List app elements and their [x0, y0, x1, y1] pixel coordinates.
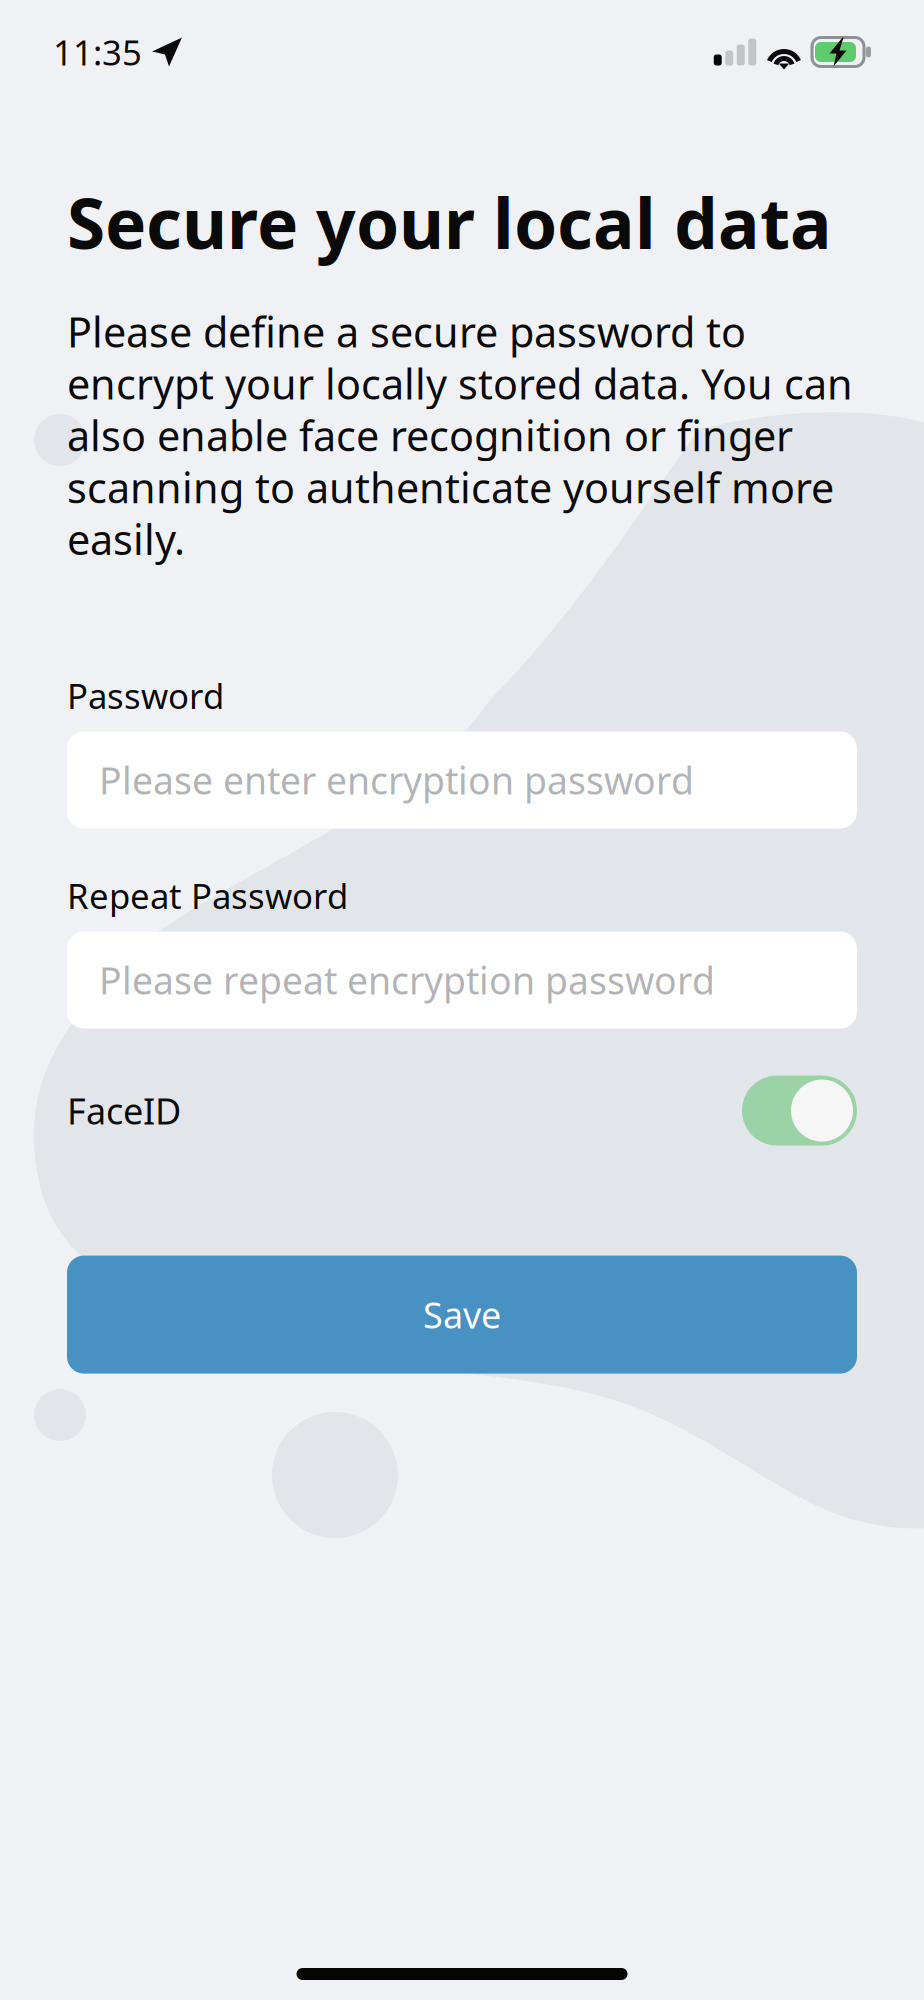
- button[interactable]: Password field: [67, 731, 857, 828]
- staticText: Secure your local data: [67, 176, 832, 268]
- staticText: 11:35: [53, 29, 142, 75]
- staticText: Please enter encryption password: [99, 755, 694, 805]
- staticText: Save: [423, 1291, 501, 1338]
- staticText: Password: [67, 672, 224, 718]
- staticText: Repeat Password: [67, 872, 348, 918]
- staticText: Please repeat encryption password: [99, 955, 715, 1005]
- button[interactable]: Repeat Password field: [67, 932, 857, 1029]
- button[interactable]: Save: [67, 1256, 857, 1374]
- staticText: FaceID: [67, 1087, 181, 1134]
- button[interactable]: FaceID: [67, 1076, 857, 1146]
- staticText: Please define a secure password to encry…: [67, 304, 853, 566]
